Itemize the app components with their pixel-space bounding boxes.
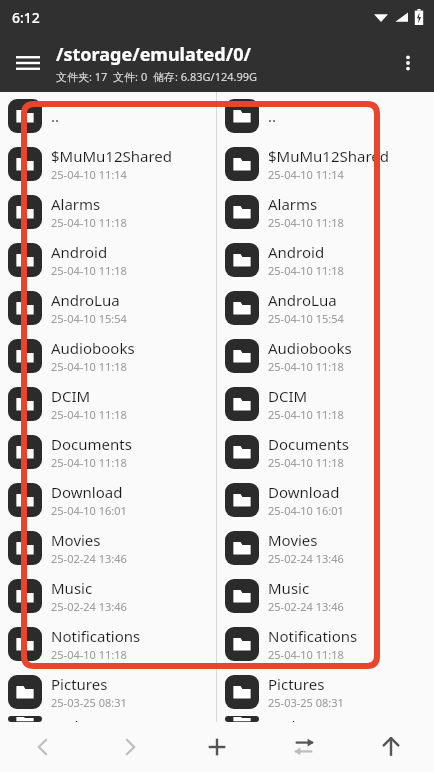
button[interactable]: Movies [0, 524, 216, 572]
button[interactable]: Music [217, 572, 434, 620]
staticText: Android [268, 242, 325, 262]
staticText: 25-04-10 11:18 [51, 455, 127, 470]
button[interactable]: Documents [217, 428, 434, 476]
staticText: 25-04-10 11:18 [51, 263, 127, 278]
button[interactable]: Forward [86, 722, 173, 772]
staticText: Alarms [51, 194, 101, 214]
button[interactable]: DCIM [217, 380, 434, 428]
button[interactable]: Transfer [260, 722, 347, 772]
staticText: Podcasts [268, 716, 331, 722]
staticText: 25-04-10 11:14 [268, 167, 344, 182]
button[interactable]: .. [0, 92, 216, 140]
staticText: 25-04-10 11:18 [268, 647, 344, 662]
button[interactable]: Notifications [0, 620, 216, 668]
staticText: $MuMu12Shared [51, 146, 172, 166]
staticText: DCIM [51, 386, 91, 406]
button[interactable]: $MuMu12Shared [217, 140, 434, 188]
button[interactable]: Audiobooks [0, 332, 216, 380]
staticText: Download [51, 482, 123, 502]
staticText: DCIM [268, 386, 308, 406]
staticText: 25-04-10 16:01 [268, 503, 344, 518]
button[interactable]: .. [217, 92, 434, 140]
button[interactable]: DCIM [0, 380, 216, 428]
staticText: Movies [51, 530, 101, 550]
staticText: 25-04-10 11:18 [268, 359, 344, 374]
button[interactable]: Documents [0, 428, 216, 476]
staticText: /storage/emulated/0/ [56, 42, 251, 67]
button[interactable]: Podcasts [217, 716, 434, 722]
staticText: 25-04-10 11:18 [268, 407, 344, 422]
staticText: Music [51, 578, 93, 598]
staticText: Podcasts [51, 716, 114, 722]
button[interactable]: New [173, 722, 260, 772]
staticText: Alarms [268, 194, 318, 214]
button[interactable]: $MuMu12Shared [0, 140, 216, 188]
staticText: Download [268, 482, 340, 502]
staticText: 25-04-10 11:18 [51, 407, 127, 422]
staticText: Pictures [51, 674, 108, 694]
staticText: Documents [51, 434, 132, 454]
button[interactable]: AndroLua [0, 284, 216, 332]
staticText: 25-04-10 11:14 [51, 167, 127, 182]
staticText: .. [268, 106, 277, 126]
button[interactable]: Podcasts [0, 716, 216, 722]
staticText: 25-03-25 08:31 [51, 695, 127, 710]
staticText: 25-02-24 13:46 [268, 599, 344, 614]
staticText: Notifications [268, 626, 358, 646]
button[interactable]: Movies [217, 524, 434, 572]
staticText: Audiobooks [268, 338, 352, 358]
staticText: 25-03-25 08:31 [268, 695, 344, 710]
staticText: 25-04-10 11:18 [268, 263, 344, 278]
button[interactable]: Alarms [0, 188, 216, 236]
staticText: Movies [268, 530, 318, 550]
staticText: 25-02-24 13:46 [268, 551, 344, 566]
button[interactable]: Pictures [217, 668, 434, 716]
button[interactable]: Back [0, 722, 86, 772]
staticText: Android [51, 242, 108, 262]
button[interactable]: Notifications [217, 620, 434, 668]
button[interactable]: Audiobooks [217, 332, 434, 380]
staticText: 25-04-10 16:01 [51, 503, 127, 518]
staticText: 25-04-10 15:54 [51, 311, 127, 326]
staticText: 25-04-10 11:18 [51, 647, 127, 662]
staticText: 25-02-24 13:46 [51, 599, 127, 614]
button[interactable]: Download [217, 476, 434, 524]
button[interactable]: More options [382, 37, 434, 89]
button[interactable]: Alarms [217, 188, 434, 236]
button[interactable]: Pictures [0, 668, 216, 716]
button[interactable]: Menu [0, 35, 56, 91]
button[interactable]: AndroLua [217, 284, 434, 332]
staticText: 文件夹: 17 文件: 0 储存: 6.83G/124.99G [56, 69, 258, 84]
button[interactable]: Android [217, 236, 434, 284]
staticText: 25-02-24 13:46 [51, 551, 127, 566]
staticText: AndroLua [268, 290, 337, 310]
staticText: 25-04-10 11:18 [268, 215, 344, 230]
button[interactable]: Music [0, 572, 216, 620]
staticText: .. [51, 106, 60, 126]
staticText: 25-04-10 15:54 [268, 311, 344, 326]
staticText: Pictures [268, 674, 325, 694]
staticText: 25-04-10 11:18 [51, 215, 127, 230]
button[interactable]: Up [347, 722, 434, 772]
button[interactable]: Download [0, 476, 216, 524]
staticText: Notifications [51, 626, 141, 646]
staticText: 6:12 [12, 8, 40, 27]
button[interactable]: Android [0, 236, 216, 284]
staticText: 25-04-10 11:18 [268, 455, 344, 470]
staticText: AndroLua [51, 290, 120, 310]
staticText: $MuMu12Shared [268, 146, 389, 166]
staticText: Music [268, 578, 310, 598]
staticText: 25-04-10 11:18 [51, 359, 127, 374]
staticText: Audiobooks [51, 338, 135, 358]
staticText: Documents [268, 434, 349, 454]
